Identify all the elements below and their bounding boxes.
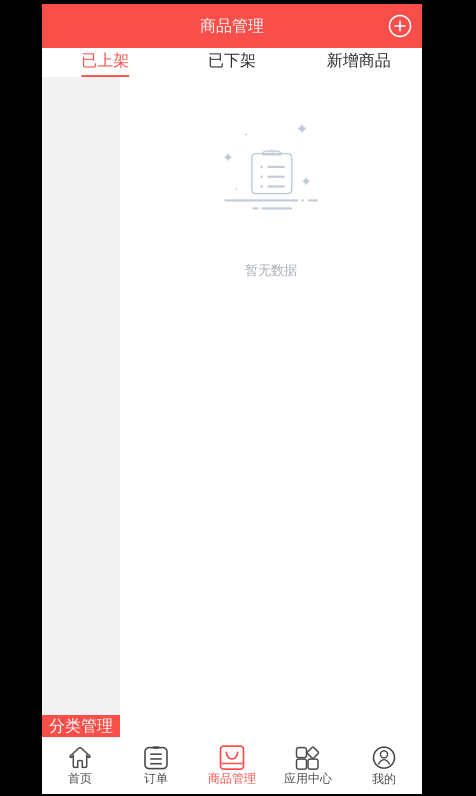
- button[interactable]: 新增商品: [295, 48, 422, 77]
- button[interactable]: 我的: [346, 741, 422, 791]
- staticText: 分类管理: [49, 716, 113, 736]
- button[interactable]: 分类管理: [42, 715, 120, 737]
- button[interactable]: 已上架: [42, 48, 169, 77]
- button[interactable]: 新增: [388, 14, 422, 38]
- button[interactable]: 已下架: [169, 48, 295, 77]
- button[interactable]: 首页: [42, 741, 118, 791]
- button[interactable]: 商品管理: [194, 741, 270, 791]
- staticText: 订单: [144, 771, 168, 786]
- staticText: 暂无数据: [245, 262, 297, 278]
- staticText: 应用中心: [284, 771, 332, 786]
- staticText: 首页: [68, 771, 92, 786]
- staticText: 已上架: [81, 50, 129, 70]
- staticText: 商品管理: [208, 771, 256, 786]
- staticText: 已下架: [208, 50, 256, 70]
- staticText: 我的: [372, 772, 396, 786]
- button[interactable]: 应用中心: [270, 741, 346, 791]
- staticText: 新增商品: [327, 50, 391, 70]
- button[interactable]: 订单: [118, 741, 194, 791]
- staticText: 商品管理: [200, 16, 264, 36]
